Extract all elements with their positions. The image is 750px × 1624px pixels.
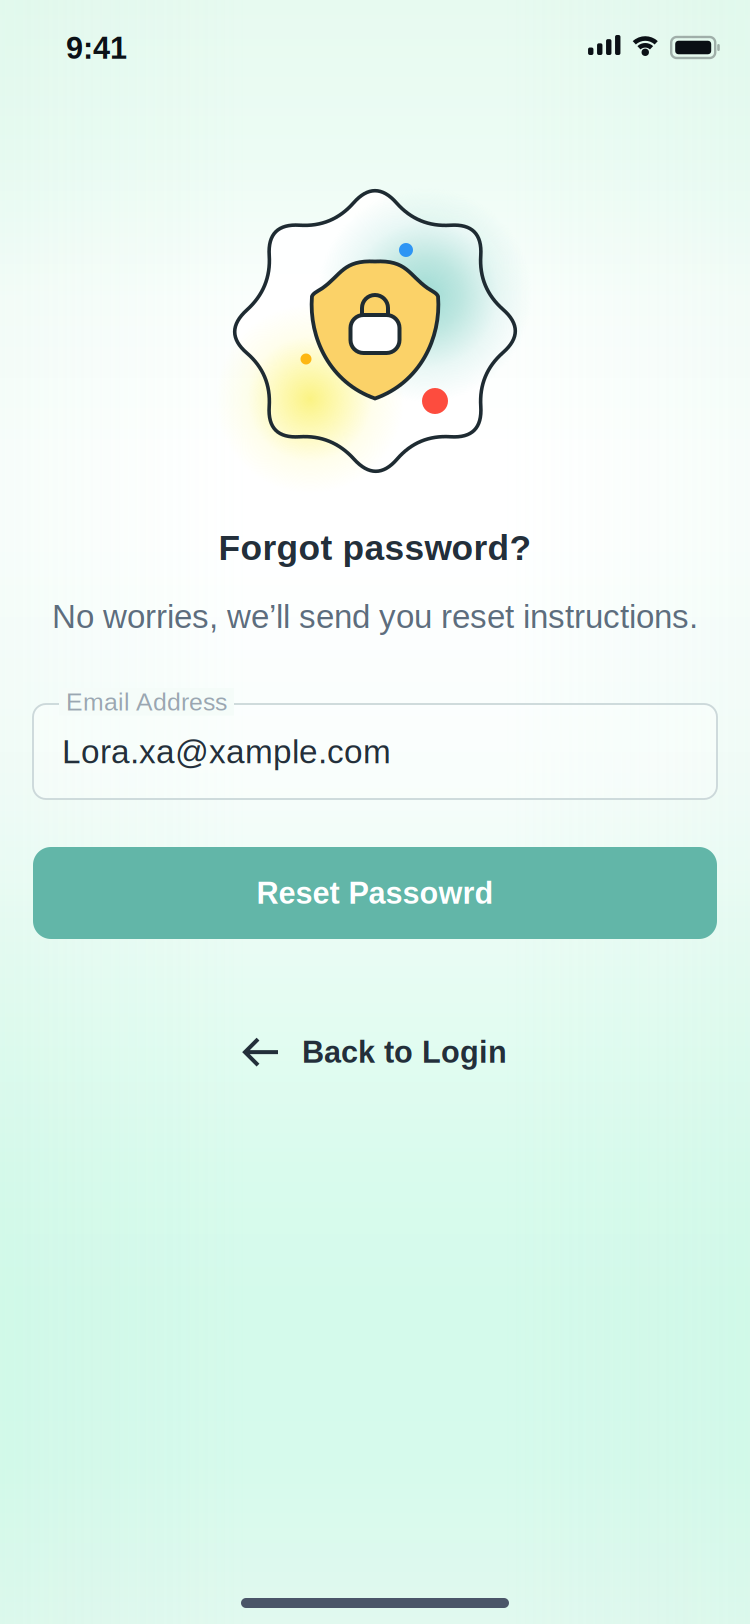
staticText: Back to Login [302,1035,507,1069]
staticText: 9:41 [66,31,127,65]
staticText: No worries, we’ll send you reset instruc… [52,598,698,635]
staticText: Forgot password? [218,528,531,567]
staticText: Lora.xa@xample.com [62,733,391,770]
button[interactable]: Back to Login [0,1035,750,1069]
staticText: Email Address [66,688,227,716]
button[interactable]: Reset Passowrd [33,847,717,939]
staticText: Reset Passowrd [256,876,493,910]
